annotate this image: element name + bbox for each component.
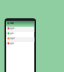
button[interactable] xyxy=(6,32,34,37)
button[interactable] xyxy=(6,37,34,42)
button[interactable]: Open navigation menu xyxy=(6,21,34,27)
button[interactable]: Open navigation menu xyxy=(7,22,11,26)
button[interactable] xyxy=(6,42,34,47)
button[interactable] xyxy=(6,27,34,32)
